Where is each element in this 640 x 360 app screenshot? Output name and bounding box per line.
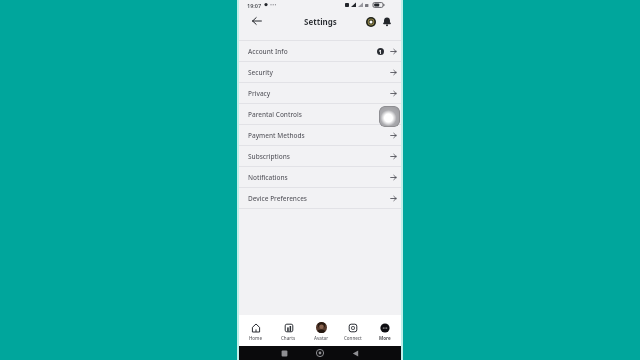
staticText: Security <box>248 68 273 77</box>
staticText: Home <box>249 335 262 341</box>
staticText: Account Info <box>248 47 288 56</box>
staticText: Subscriptions <box>248 152 291 161</box>
button[interactable] <box>365 16 376 27</box>
staticText: Charts <box>281 335 296 341</box>
button[interactable]: Subscriptions <box>239 146 401 167</box>
staticText: More <box>379 335 391 341</box>
button[interactable]: Charts <box>272 315 305 346</box>
button[interactable]: Notifications <box>239 167 401 188</box>
staticText: Notifications <box>248 173 288 182</box>
staticText: Connect <box>344 335 362 341</box>
staticText: Privacy <box>248 89 271 98</box>
button[interactable] <box>316 349 324 357</box>
button[interactable]: Avatar <box>305 315 337 346</box>
button[interactable] <box>381 16 392 27</box>
button[interactable] <box>379 106 400 127</box>
staticText: 1 <box>379 49 382 55</box>
button[interactable]: Home <box>239 315 272 346</box>
button[interactable]: Payment Methods <box>239 125 401 146</box>
button[interactable] <box>281 350 288 357</box>
button[interactable]: Device Preferences <box>239 188 401 209</box>
staticText: Parental Controls <box>248 110 302 119</box>
button[interactable]: Account Info <box>239 41 401 62</box>
button[interactable]: Security <box>239 62 401 83</box>
staticText: 19:07 <box>247 2 262 9</box>
button[interactable]: Privacy <box>239 83 401 104</box>
staticText: Payment Methods <box>248 131 305 140</box>
staticText: Device Preferences <box>248 194 308 203</box>
staticText: Avatar <box>314 335 329 341</box>
button[interactable] <box>352 350 359 357</box>
button[interactable]: Connect <box>337 315 369 346</box>
button[interactable] <box>251 15 263 27</box>
staticText: Settings <box>304 16 337 27</box>
button[interactable]: Parental Controls <box>239 104 401 125</box>
button[interactable]: More <box>369 315 401 346</box>
